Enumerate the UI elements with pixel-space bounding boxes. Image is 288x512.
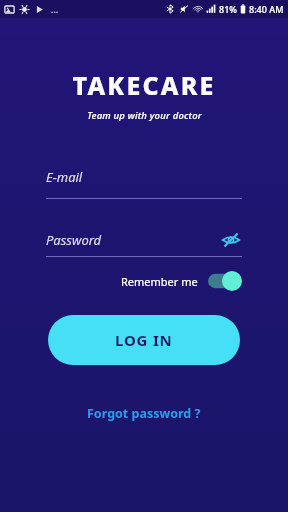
staticText: E-mail: [46, 168, 83, 186]
button[interactable]: Password: [46, 229, 242, 251]
staticText: ...: [51, 3, 59, 15]
staticText: Remember me: [121, 274, 198, 289]
staticText: Forgot password ?: [87, 405, 201, 422]
staticText: Password: [46, 231, 102, 249]
staticText: Team up with your doctor: [87, 109, 202, 122]
staticText: LOG IN: [115, 330, 173, 350]
staticText: 8:40 AM: [249, 3, 284, 15]
button[interactable]: E-mail: [46, 168, 242, 199]
button[interactable]: Show password: [220, 229, 242, 251]
button[interactable]: LOG IN: [48, 315, 240, 365]
button[interactable]: Forgot password ?: [81, 402, 207, 425]
staticText: 81%: [219, 3, 237, 15]
other: Remember me toggle: [208, 271, 242, 291]
button[interactable]: Remember me: [121, 271, 242, 291]
staticText: TAKECARE: [72, 68, 216, 102]
